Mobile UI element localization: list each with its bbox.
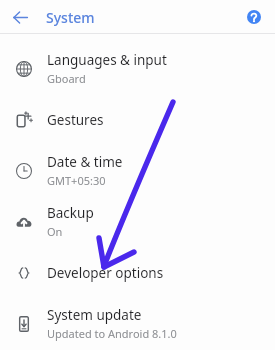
button[interactable]: Date & time xyxy=(0,145,275,196)
button[interactable]: Help xyxy=(242,5,266,29)
staticText: Gboard xyxy=(47,71,86,86)
staticText: System update xyxy=(47,306,142,324)
button[interactable]: Languages & input xyxy=(0,43,275,94)
button[interactable]: Backup xyxy=(0,196,275,247)
button[interactable]: Gestures xyxy=(0,94,275,145)
staticText: Developer options xyxy=(47,264,164,282)
staticText: Backup xyxy=(47,204,94,222)
staticText: Date & time xyxy=(47,153,123,171)
staticText: System xyxy=(46,8,95,27)
staticText: Languages & input xyxy=(47,51,167,69)
staticText: Gestures xyxy=(47,111,104,129)
staticText: GMT+05:30 xyxy=(47,173,106,188)
button[interactable]: Back xyxy=(6,3,34,31)
staticText: On xyxy=(47,224,63,239)
button[interactable]: System update xyxy=(0,298,275,349)
staticText: Updated to Android 8.1.0 xyxy=(47,326,177,341)
button[interactable]: Developer options xyxy=(0,247,275,298)
